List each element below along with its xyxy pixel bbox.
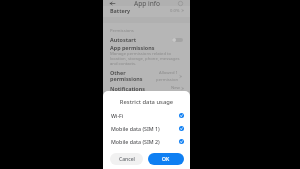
button[interactable]: OK — [148, 153, 184, 165]
staticText: Cancel — [119, 156, 135, 163]
button[interactable]: Wi-Fi — [103, 109, 190, 122]
staticText: 0.0% — [170, 8, 180, 14]
staticText: App info — [134, 0, 161, 8]
staticText: Permissions — [110, 28, 134, 34]
button[interactable]: Autostart — [103, 34, 190, 45]
staticText: Allowed 1 permission — [156, 70, 178, 82]
button[interactable]: Cancel — [110, 153, 143, 165]
button[interactable]: Mobile data (SIM 1) — [103, 122, 190, 135]
staticText: Autostart — [110, 36, 136, 43]
staticText: Mobile data (SIM 2) — [111, 138, 160, 145]
staticText: Manage permissions related to location, … — [110, 51, 180, 66]
staticText: Other permissions — [110, 69, 143, 83]
button[interactable]: App permissions — [103, 44, 190, 66]
staticText: App permissions — [110, 44, 155, 51]
staticText: Restrict data usage — [103, 98, 190, 106]
button[interactable]: Battery — [103, 5, 190, 16]
button[interactable]: Other permissions — [103, 69, 190, 83]
button[interactable]: Mobile data (SIM 2) — [103, 135, 190, 148]
staticText: Battery — [110, 7, 131, 14]
button[interactable]: Help — [177, 0, 184, 7]
staticText: New — [171, 85, 180, 91]
button[interactable]: Notifications — [103, 83, 190, 93]
staticText: Mobile data (SIM 1) — [111, 125, 160, 132]
staticText: Wi-Fi — [111, 112, 124, 119]
button[interactable]: Back — [109, 0, 116, 7]
staticText: Notifications — [110, 85, 145, 92]
staticText: OK — [162, 156, 170, 163]
